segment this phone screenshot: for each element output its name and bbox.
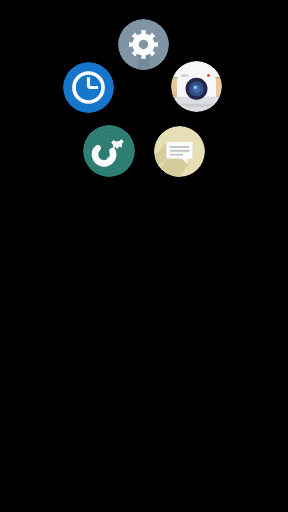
button[interactable]: Settings (118, 19, 169, 70)
button[interactable]: Clock (63, 62, 114, 113)
button[interactable]: Camera (171, 61, 222, 112)
button[interactable]: Messages (154, 126, 205, 177)
button[interactable]: Phone (83, 125, 135, 177)
